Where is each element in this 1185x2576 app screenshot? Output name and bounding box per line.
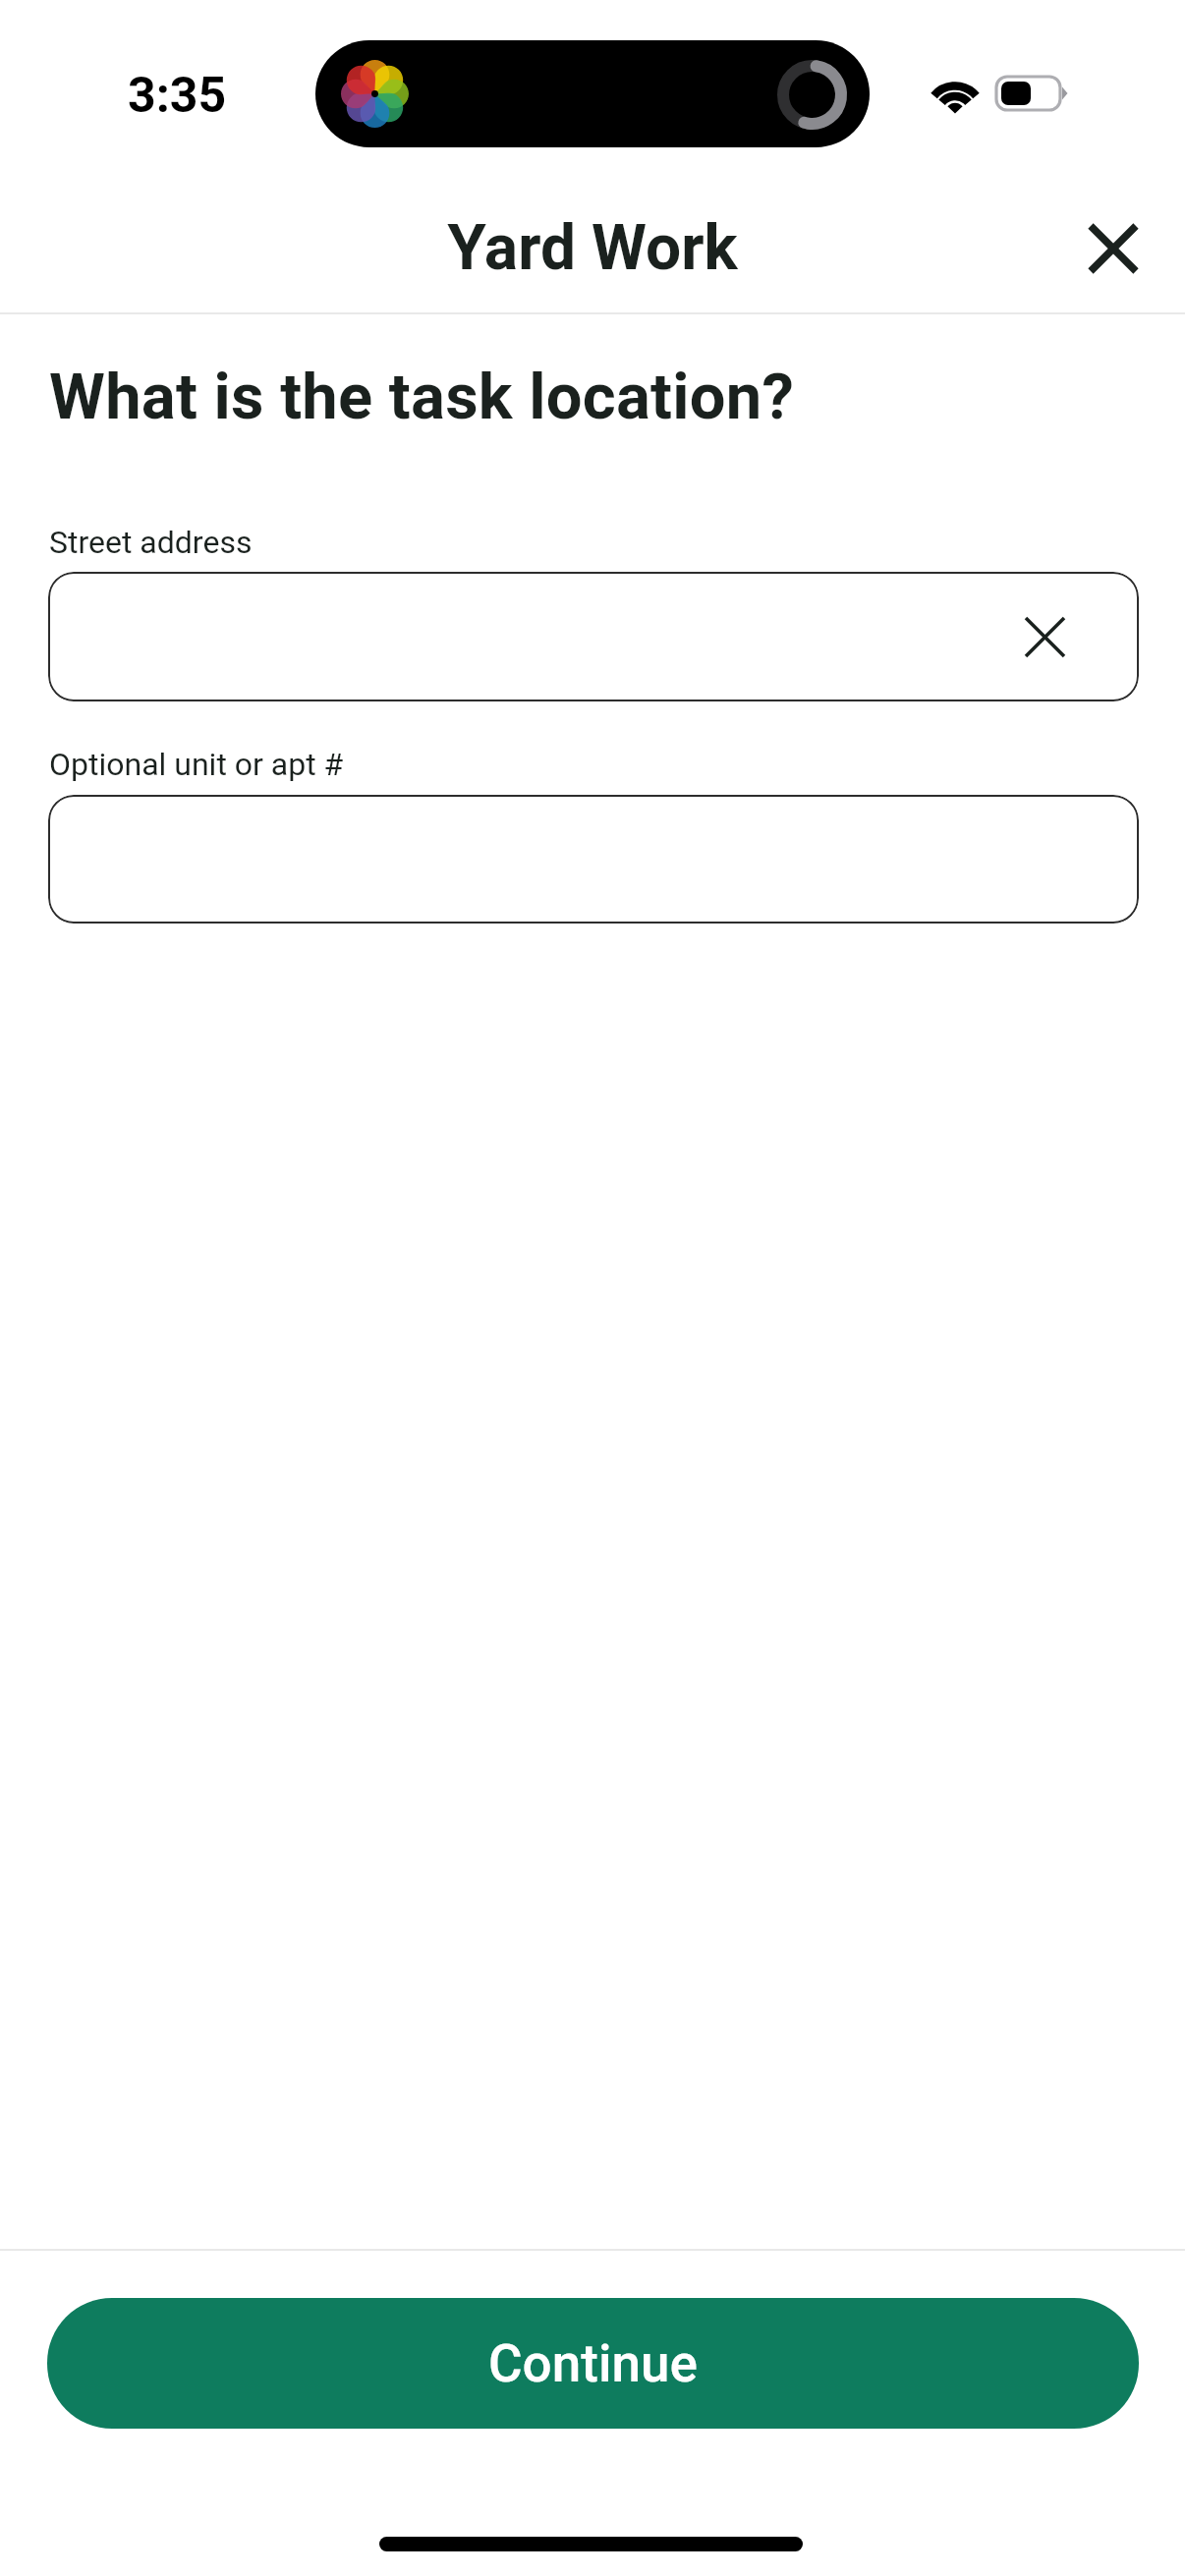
button[interactable]: Continue [47,2298,1139,2429]
staticText: What is the task location? [49,360,794,434]
button[interactable]: Clear street address [1008,600,1082,674]
staticText: 3:35 [128,67,227,125]
staticText: Yard Work [0,211,1185,285]
button[interactable]: Optional unit or apt number field [48,795,1139,924]
staticText: Continue [488,2333,698,2394]
staticText: Optional unit or apt # [49,746,344,783]
button[interactable]: Close [1064,199,1162,298]
staticText: Street address [49,524,253,561]
button[interactable]: Street address field [48,572,1139,701]
